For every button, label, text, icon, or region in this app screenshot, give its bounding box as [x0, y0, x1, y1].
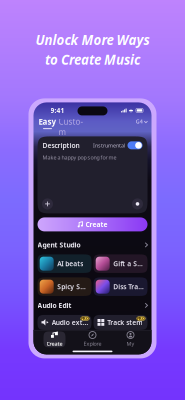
staticText: Unlock More Ways	[35, 31, 149, 49]
staticText: Easy	[38, 116, 56, 127]
staticText: Agent Studio	[37, 240, 80, 249]
button[interactable]: Agent Studio	[37, 240, 147, 249]
button[interactable]: Diss Tracks	[93, 277, 147, 296]
button[interactable]: Track stem	[93, 315, 147, 330]
button[interactable]: AI beats	[37, 254, 91, 273]
staticText: AI beats	[57, 259, 83, 268]
button[interactable]: Spicy Song	[37, 277, 91, 296]
button[interactable]: Create	[35, 331, 73, 348]
staticText: Track stem	[107, 318, 142, 327]
button[interactable]: Create	[37, 217, 147, 231]
staticText: Instrumental	[93, 142, 125, 149]
staticText: Gift a Song	[113, 259, 144, 268]
staticText: Custom	[58, 116, 83, 137]
button[interactable]: Instrumental	[127, 141, 142, 149]
button[interactable]: Easy	[37, 116, 57, 129]
button[interactable]: My	[111, 331, 149, 348]
staticText: Spicy Song	[57, 282, 88, 291]
button[interactable]: Audio extend	[37, 315, 91, 330]
staticText: Diss Tracks	[113, 282, 144, 291]
staticText: PRO	[137, 316, 145, 321]
staticText: Description	[42, 141, 79, 150]
staticText: My	[126, 340, 134, 347]
button[interactable]: Gift a Song	[93, 254, 147, 273]
button[interactable]: Custom	[57, 116, 84, 137]
button[interactable]: Audio Edit	[37, 301, 147, 310]
staticText: Create	[46, 340, 62, 347]
staticText: Audio Edit	[37, 301, 71, 310]
staticText: 9:41	[50, 106, 64, 115]
staticText: G4	[136, 118, 143, 125]
button[interactable]: Voice input	[132, 198, 143, 209]
button[interactable]: G4	[136, 116, 147, 125]
staticText: Create	[85, 220, 107, 229]
staticText: Make a happy pop song for me	[42, 154, 116, 161]
button[interactable]: Add attachment	[42, 198, 53, 209]
staticText: to Create Music	[45, 51, 140, 68]
staticText: PRO	[81, 316, 89, 321]
staticText: Audio extend	[52, 318, 88, 327]
button[interactable]: Explore	[73, 331, 111, 348]
staticText: Explore	[83, 340, 101, 347]
